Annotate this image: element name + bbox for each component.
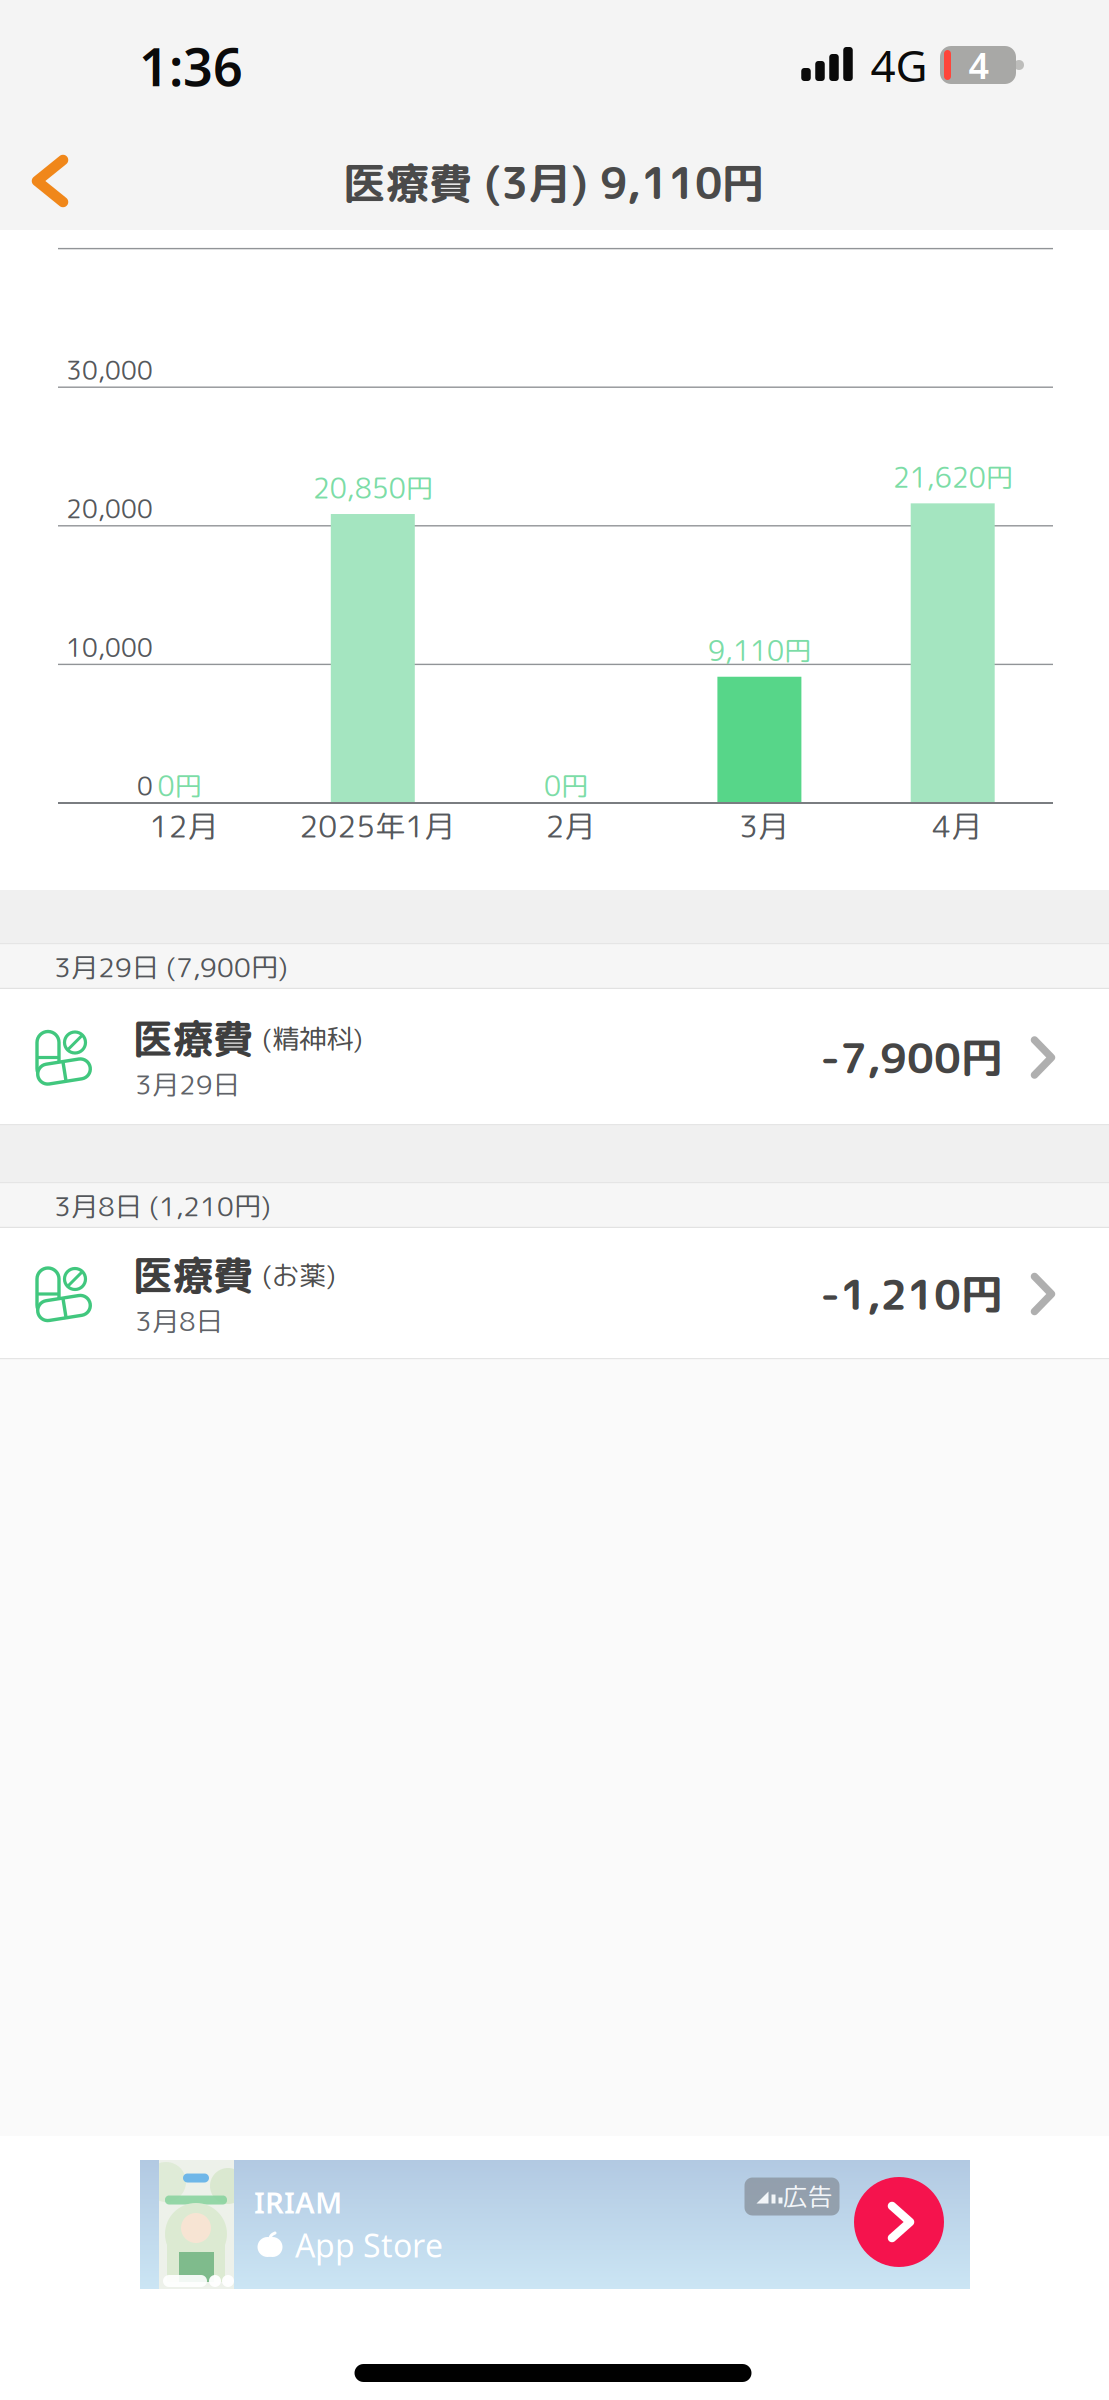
button[interactable]: 医療費 [0,1228,1109,1358]
staticText: 医療費 [133,1247,253,1303]
staticText: 医療費 [133,1011,253,1066]
staticText: 12月 [149,805,217,847]
staticText: 3月8日 (1,210円) [54,1187,271,1225]
staticText: 3月29日 (7,900円) [54,948,288,986]
staticText: 30,000 [66,352,153,388]
staticText: -1,210円 [820,1265,1003,1323]
button[interactable]: Back [14,136,104,226]
staticText: 医療費 (3月) 9,110円 [343,153,765,213]
staticText: 3月29日 [135,1066,240,1103]
staticText: 0円 [157,767,201,805]
staticText: (精神科) [262,1020,363,1057]
staticText: 2月 [546,805,595,847]
staticText: 4月 [932,805,981,847]
staticText: (お薬) [262,1256,336,1294]
staticText: 20,000 [66,491,153,526]
staticText: -7,900円 [820,1028,1003,1087]
button[interactable]: 医療費 [0,989,1109,1124]
staticText: 3月8日 [135,1302,223,1340]
staticText: 0 [137,768,153,804]
staticText: 0円 [544,767,588,805]
staticText: 4 [968,41,989,89]
staticText: 20,850円 [313,469,433,507]
staticText: App Store [295,2224,443,2266]
staticText: 2025年1月 [299,805,454,847]
staticText: IRIAM [254,2182,342,2221]
staticText: 9,110円 [708,632,811,670]
staticText: 3月 [739,805,788,847]
staticText: 広告 [782,2179,832,2214]
staticText: 1:36 [139,31,243,101]
staticText: 4G [870,36,927,94]
staticText: 21,620円 [893,458,1013,496]
button[interactable]: 広告: IRIAM — App Store [140,2160,970,2289]
staticText: 10,000 [66,630,153,665]
